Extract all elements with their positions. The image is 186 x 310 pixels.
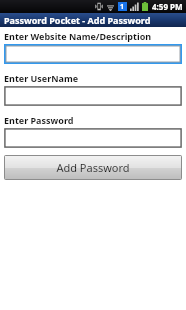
button[interactable] xyxy=(5,87,181,105)
staticText: Enter Website Name/Description xyxy=(4,30,152,42)
button[interactable] xyxy=(6,46,180,62)
staticText: Add Password xyxy=(56,160,130,175)
button[interactable] xyxy=(5,129,181,147)
button[interactable]: Add Password xyxy=(5,156,181,179)
staticText: Enter Password xyxy=(4,114,74,126)
staticText: 4:59 PM xyxy=(152,1,183,12)
staticText: 1 xyxy=(120,2,125,11)
staticText: Enter UserName xyxy=(4,72,79,84)
staticText: Password Pocket - Add Password xyxy=(4,14,151,26)
